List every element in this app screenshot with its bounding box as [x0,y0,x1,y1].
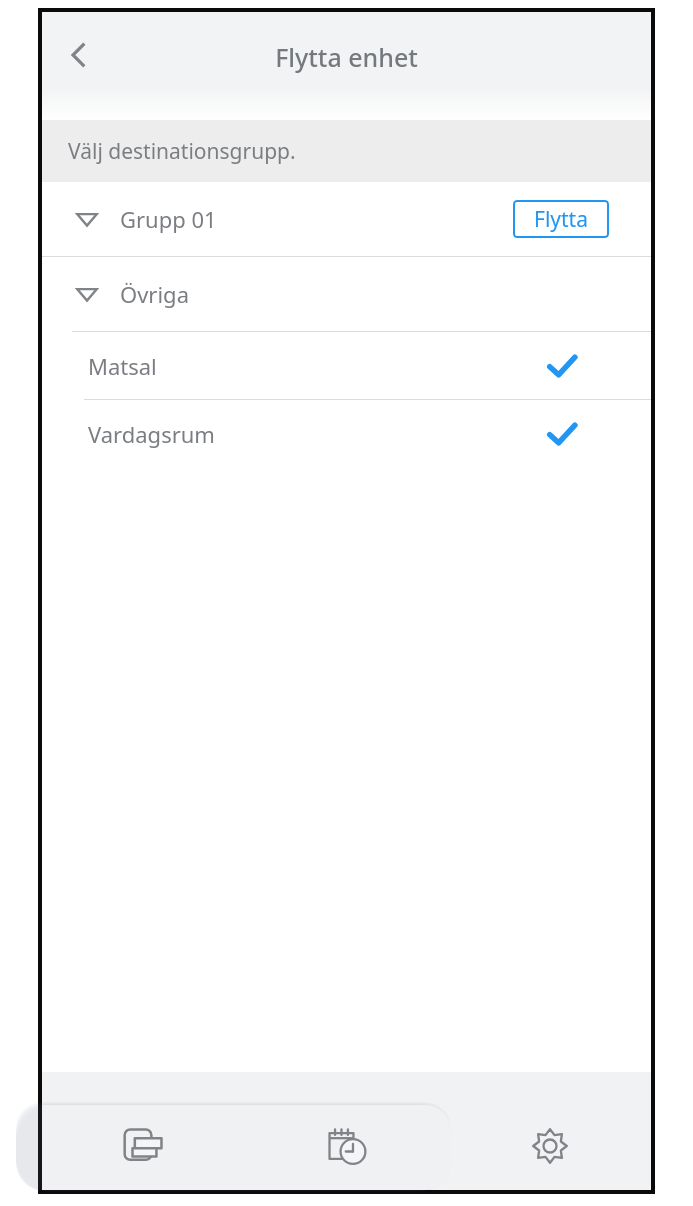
staticText: Grupp 01 [120,204,217,234]
button[interactable]: Devices [42,1102,245,1190]
button[interactable]: Matsal [42,332,651,399]
button[interactable]: Back [42,18,116,92]
button[interactable]: Vardagsrum [42,400,651,467]
button[interactable]: Övriga [42,257,651,331]
button[interactable]: Flytta [513,200,609,238]
staticText: Välj destinationsgrupp. [68,137,296,166]
staticText: Övriga [120,279,189,309]
staticText: Vardagsrum [88,419,215,449]
button[interactable]: Schedule [245,1102,448,1190]
staticText: Matsal [88,351,157,381]
button[interactable]: Grupp 01 [42,182,651,256]
button[interactable]: Settings [448,1102,651,1190]
staticText: Flytta [534,205,588,234]
staticText: Flytta enhet [275,40,418,74]
